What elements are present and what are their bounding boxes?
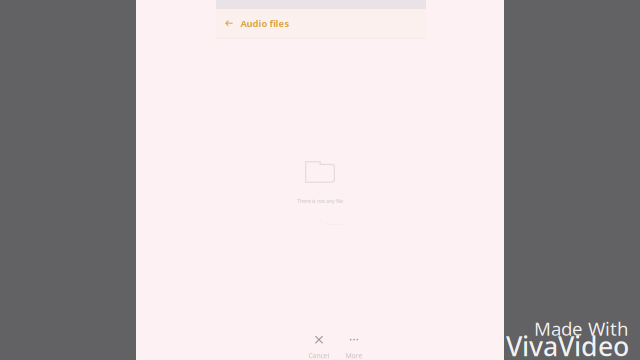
staticText: VivaVideo (506, 328, 629, 360)
staticText: More (345, 351, 362, 360)
staticText: Made With (534, 316, 629, 341)
staticText: Audio files (240, 17, 289, 30)
button[interactable]: Cancel (303, 335, 335, 360)
button[interactable]: Audio files (216, 9, 426, 38)
staticText: Cancel (308, 351, 329, 360)
staticText: There is not any file (297, 197, 343, 205)
button[interactable]: More (338, 335, 370, 360)
